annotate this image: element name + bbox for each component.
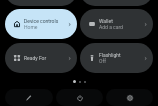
button[interactable]: Flashlight — [80, 43, 153, 73]
button[interactable]: Edit — [5, 89, 53, 106]
staticText: Ready For — [24, 55, 47, 61]
button[interactable]: Settings — [106, 89, 153, 106]
staticText: Device controls — [24, 18, 59, 24]
button[interactable]: Wallet — [80, 9, 153, 39]
staticText: Wallet — [99, 18, 113, 24]
staticText: Flashlight — [99, 52, 121, 58]
button[interactable]: Power — [56, 89, 103, 106]
button[interactable]: Ready For — [5, 43, 77, 73]
staticText: Add a card — [99, 24, 123, 30]
staticText: Off — [99, 58, 106, 64]
button[interactable] — [80, 0, 153, 6]
staticText: Home — [24, 24, 38, 30]
button[interactable]: Device controls — [5, 9, 77, 39]
button[interactable] — [5, 0, 77, 6]
